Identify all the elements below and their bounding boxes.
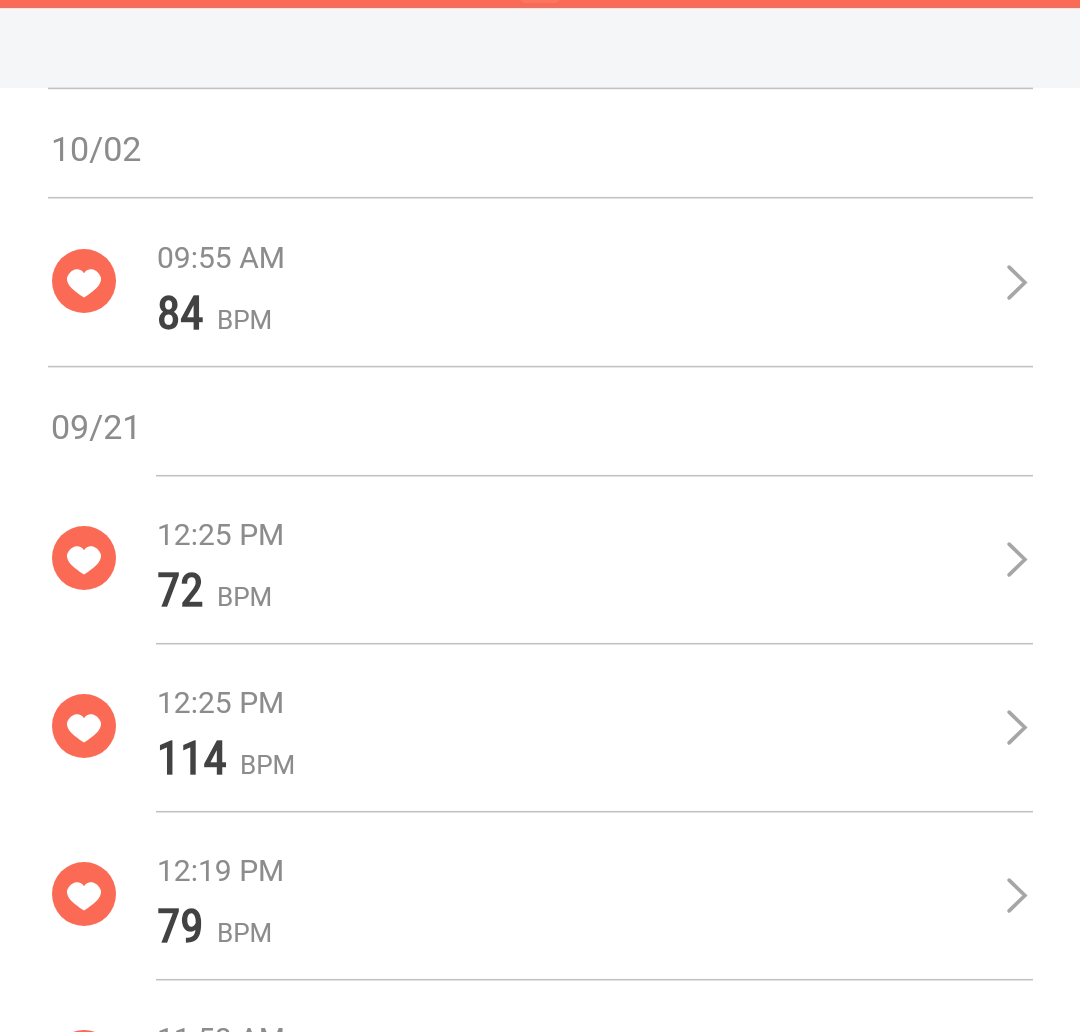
staticText: 84	[157, 285, 204, 340]
staticText: BPM	[240, 750, 296, 780]
button[interactable]: Open details	[993, 258, 1041, 306]
staticText: BPM	[217, 305, 273, 335]
button[interactable]: 11:58 AM	[0, 979, 1080, 1032]
button[interactable]: 09:55 AM	[0, 197, 1080, 366]
staticText: BPM	[217, 582, 273, 612]
button[interactable]: 12:25 PM	[0, 643, 1080, 811]
button[interactable]: Open details	[993, 703, 1041, 751]
staticText: 11:58 AM	[157, 1021, 285, 1032]
staticText: 79	[157, 898, 204, 953]
button[interactable]: 12:19 PM	[0, 811, 1080, 979]
staticText: 12:19 PM	[157, 853, 285, 888]
button[interactable]: 12:25 PM	[0, 475, 1080, 643]
button[interactable]: Open details	[993, 871, 1041, 919]
staticText: BPM	[217, 918, 273, 948]
staticText: 114	[157, 730, 227, 785]
staticText: 72	[157, 562, 204, 617]
staticText: 12:25 PM	[157, 517, 285, 552]
button[interactable]: Open details	[993, 535, 1041, 583]
staticText: 09:55 AM	[157, 240, 285, 275]
staticText: 10/02	[51, 129, 142, 169]
staticText: 09/21	[51, 407, 142, 447]
staticText: 12:25 PM	[157, 685, 285, 720]
